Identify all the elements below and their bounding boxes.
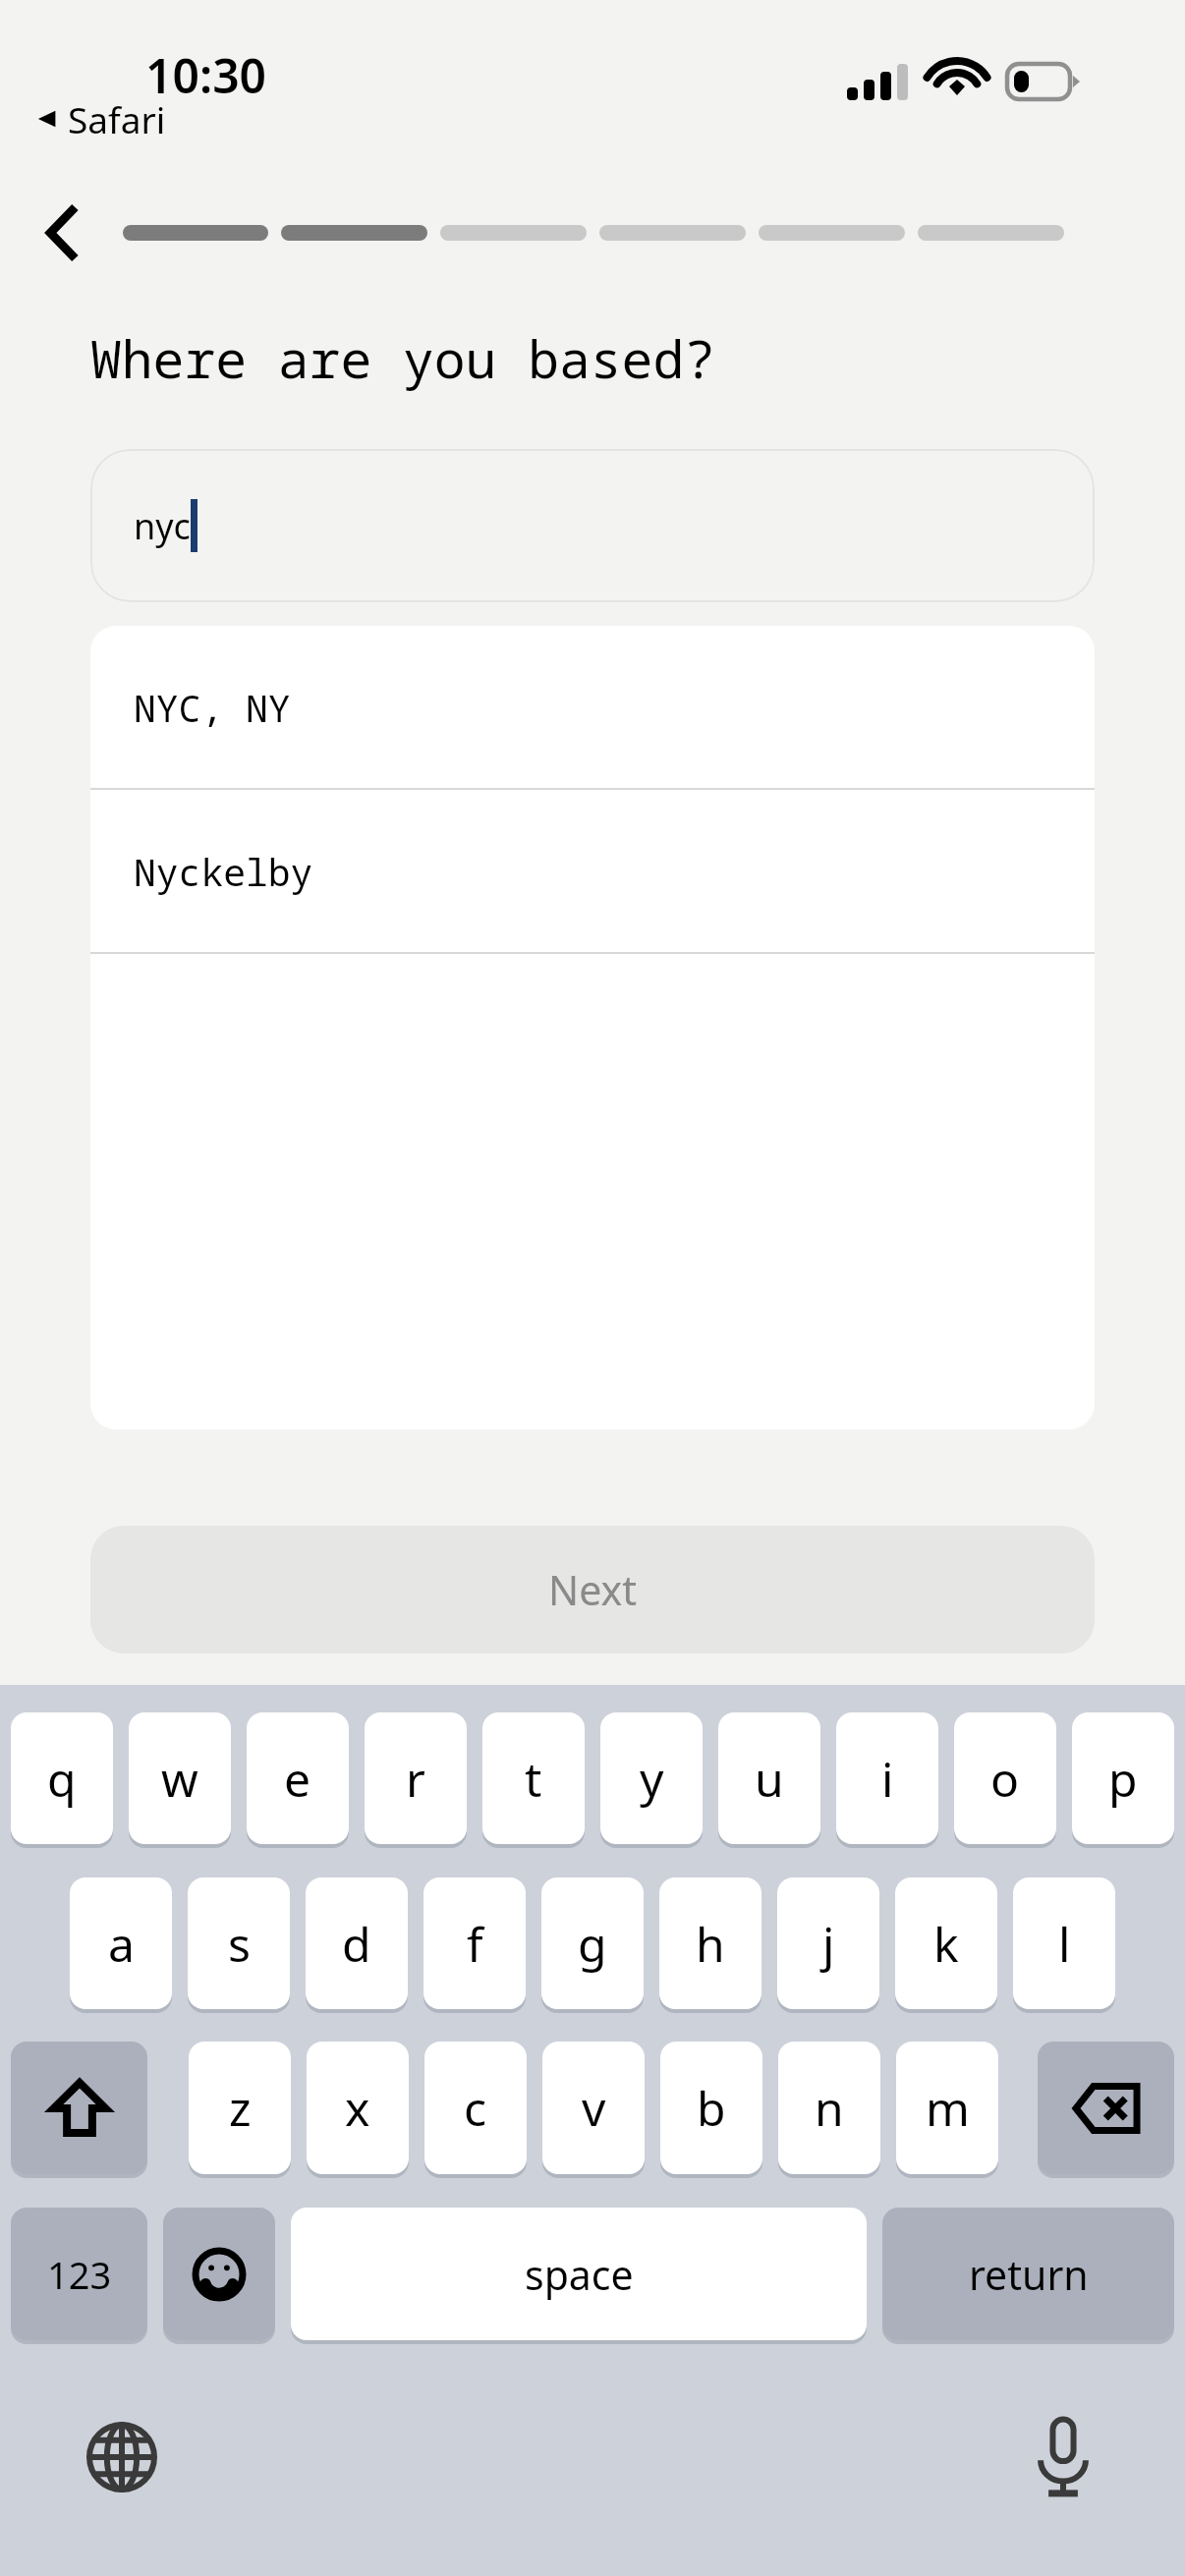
staticText: v: [582, 2076, 606, 2140]
button[interactable]: s: [188, 1877, 290, 2009]
button[interactable]: j: [777, 1877, 879, 2009]
button[interactable]: f: [423, 1877, 526, 2009]
button[interactable]: Next: [90, 1526, 1095, 1653]
button[interactable]: c: [424, 2042, 527, 2174]
staticText: s: [228, 1912, 251, 1976]
button[interactable]: k: [895, 1877, 997, 2009]
staticText: 123: [47, 2249, 112, 2300]
button[interactable]: e: [247, 1712, 349, 1844]
button[interactable]: o: [954, 1712, 1056, 1844]
staticText: NYC, NY: [134, 682, 291, 733]
button[interactable]: w: [129, 1712, 231, 1844]
button[interactable]: 123: [11, 2208, 147, 2340]
staticText: d: [342, 1912, 371, 1976]
staticText: t: [525, 1747, 542, 1811]
staticText: l: [1058, 1912, 1071, 1976]
staticText: r: [406, 1747, 425, 1811]
button[interactable]: r: [365, 1712, 467, 1844]
staticText: g: [578, 1912, 607, 1976]
staticText: e: [284, 1747, 311, 1811]
staticText: z: [229, 2076, 252, 2140]
button[interactable]: h: [659, 1877, 762, 2009]
button[interactable]: Shift: [11, 2042, 147, 2174]
staticText: f: [467, 1912, 483, 1976]
button[interactable]: g: [541, 1877, 644, 2009]
button[interactable]: Backspace: [1038, 2042, 1174, 2174]
button[interactable]: Nyckelby: [90, 790, 1095, 952]
button[interactable]: Emoji: [163, 2208, 275, 2340]
staticText: space: [525, 2247, 634, 2302]
button[interactable]: return: [882, 2208, 1174, 2340]
button[interactable]: l: [1013, 1877, 1115, 2009]
staticText: 10:30: [145, 43, 267, 107]
staticText: h: [696, 1912, 725, 1976]
staticText: p: [1108, 1747, 1138, 1811]
staticText: k: [933, 1912, 959, 1976]
button[interactable]: i: [836, 1712, 938, 1844]
staticText: n: [815, 2076, 844, 2140]
staticText: w: [161, 1747, 198, 1811]
staticText: b: [697, 2076, 726, 2140]
button[interactable]: Next keyboard: [75, 2410, 169, 2504]
button[interactable]: z: [189, 2042, 291, 2174]
staticText: Safari: [68, 94, 166, 143]
button[interactable]: b: [660, 2042, 762, 2174]
button[interactable]: Back: [22, 191, 106, 275]
button[interactable]: m: [896, 2042, 998, 2174]
button[interactable]: a: [70, 1877, 172, 2009]
button[interactable]: q: [11, 1712, 113, 1844]
button[interactable]: Voice input: [1016, 2410, 1110, 2504]
button[interactable]: u: [718, 1712, 820, 1844]
button[interactable]: p: [1072, 1712, 1174, 1844]
staticText: o: [990, 1747, 1020, 1811]
staticText: a: [108, 1912, 135, 1976]
button[interactable]: v: [542, 2042, 645, 2174]
staticText: y: [640, 1747, 664, 1811]
button[interactable]: t: [482, 1712, 585, 1844]
button[interactable]: x: [307, 2042, 409, 2174]
staticText: j: [822, 1912, 835, 1976]
button[interactable]: n: [778, 2042, 880, 2174]
staticText: q: [47, 1747, 77, 1811]
button[interactable]: y: [600, 1712, 703, 1844]
staticText: Next: [548, 1562, 637, 1617]
staticText: return: [969, 2247, 1089, 2302]
button[interactable]: space: [291, 2208, 867, 2340]
staticText: x: [345, 2076, 370, 2140]
staticText: u: [755, 1747, 784, 1811]
staticText: c: [464, 2076, 487, 2140]
staticText: Where are you based?: [90, 322, 715, 393]
staticText: nyc: [134, 502, 191, 550]
button[interactable]: NYC, NY: [90, 626, 1095, 788]
staticText: i: [881, 1747, 894, 1811]
staticText: m: [926, 2076, 970, 2140]
button[interactable]: nyc: [90, 449, 1095, 602]
staticText: Nyckelby: [134, 846, 313, 897]
button[interactable]: d: [306, 1877, 408, 2009]
